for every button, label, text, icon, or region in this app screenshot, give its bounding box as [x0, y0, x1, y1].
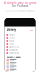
staticText: for Podcast — [12, 4, 28, 8]
button[interactable]: Edit — [30, 29, 33, 31]
staticText: Made for You — [9, 46, 19, 48]
staticText: Downloaded — [9, 49, 18, 51]
staticText: Artists — [9, 37, 15, 39]
button[interactable] — [6, 62, 33, 65]
staticText: Albums — [9, 40, 14, 42]
staticText: Edit — [30, 29, 33, 31]
button[interactable]: Artists — [6, 36, 33, 39]
staticText: Songs — [9, 43, 14, 45]
button[interactable]: Home Sharing — [6, 51, 33, 54]
button[interactable] — [6, 65, 33, 68]
button[interactable] — [6, 68, 33, 71]
staticText: Recently Added — [6, 55, 20, 58]
staticText: A simple way to grow — [4, 1, 36, 5]
staticText: Track, share and publish in one simple p… — [5, 10, 35, 12]
button[interactable]: Downloaded — [6, 48, 33, 51]
button[interactable]: Albums — [6, 39, 33, 42]
button[interactable]: Made for You — [6, 45, 33, 48]
staticText: Playlists — [9, 34, 15, 36]
button[interactable]: Playlists — [6, 33, 33, 36]
staticText: Home Sharing — [9, 52, 19, 54]
button[interactable] — [6, 59, 33, 62]
button[interactable]: Songs — [6, 42, 33, 45]
staticText: Library — [6, 28, 16, 31]
